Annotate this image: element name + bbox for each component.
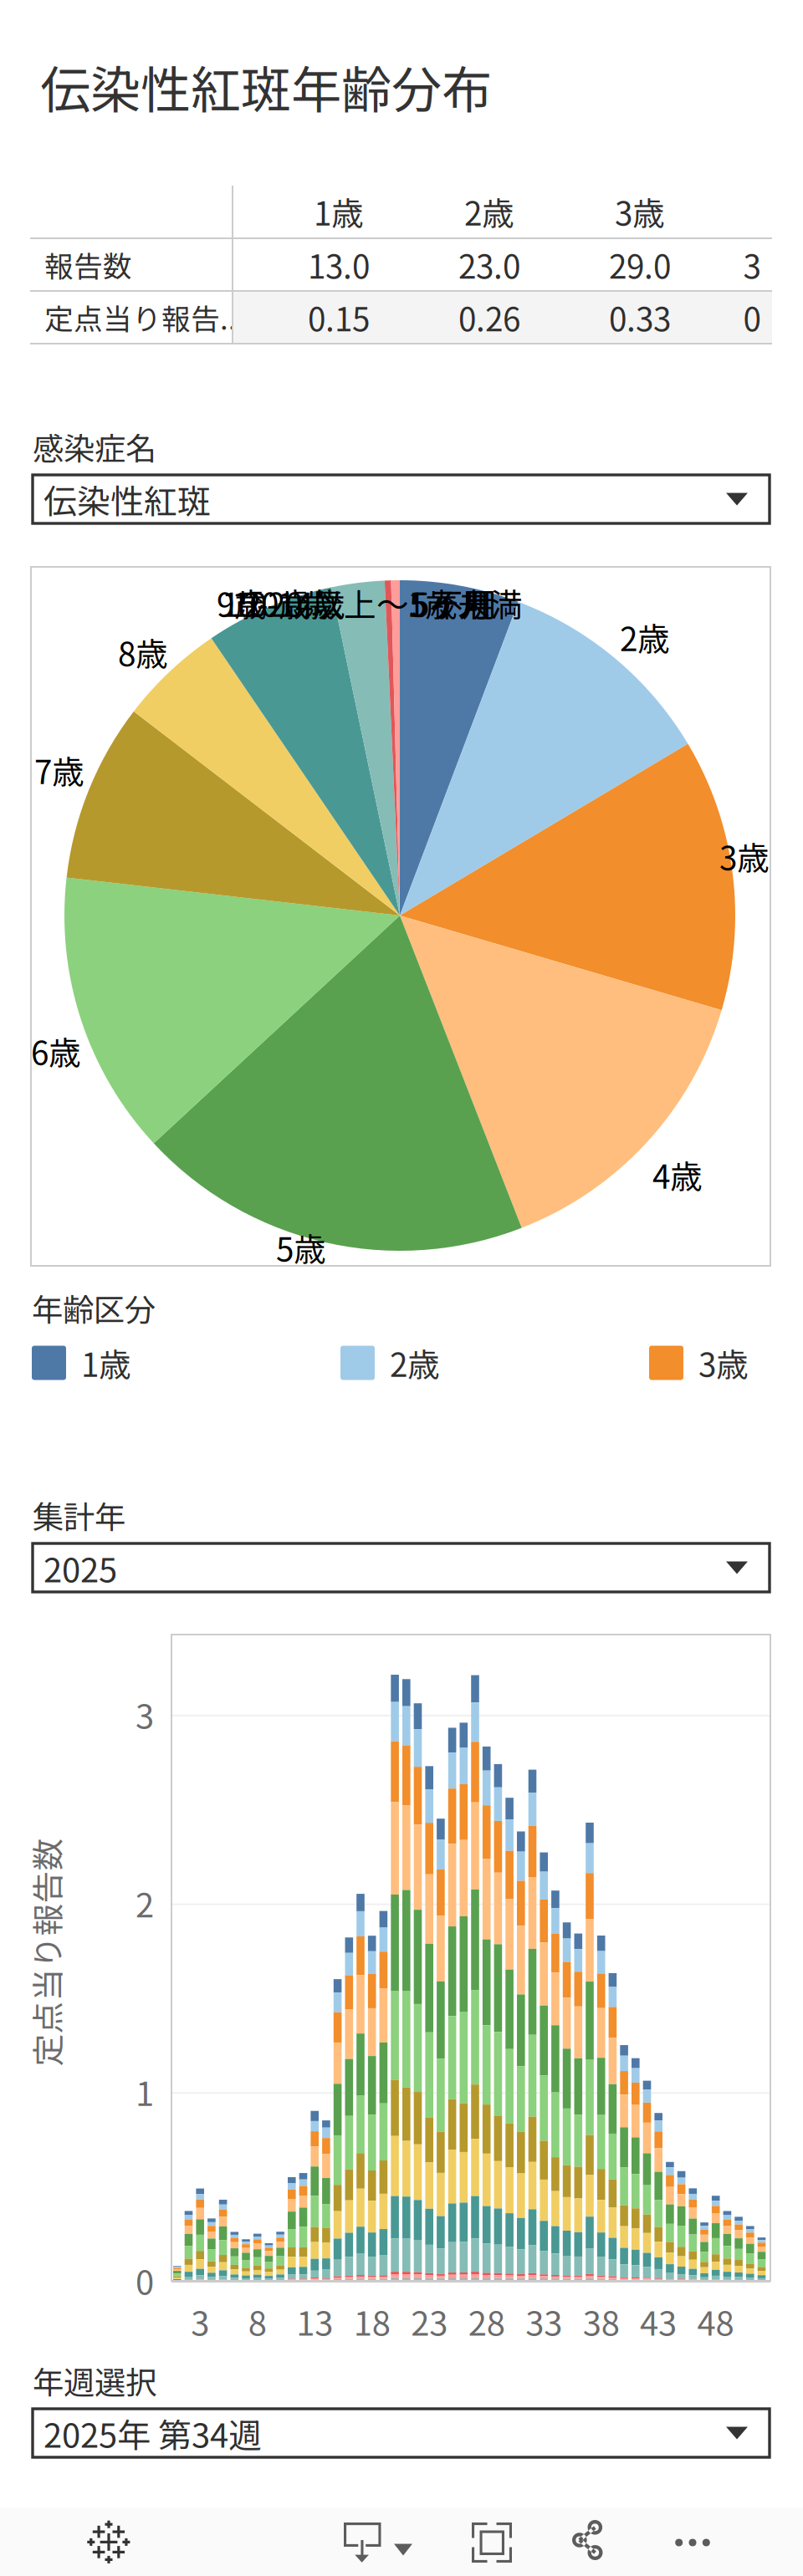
staticText: 10-14歳 <box>232 579 345 626</box>
staticText: 2歳 <box>390 1339 440 1386</box>
staticText: 伝染性紅斑 <box>43 475 211 523</box>
button[interactable]: More options <box>675 2538 710 2548</box>
staticText: 5ヶ月 <box>412 579 494 626</box>
staticText: 定点当り報告.. <box>44 296 237 338</box>
staticText: 年週選択 <box>33 2358 156 2403</box>
button[interactable]: Download <box>344 2522 413 2563</box>
staticText: 4歳 <box>652 1151 703 1198</box>
button[interactable]: Tableau <box>87 2520 130 2563</box>
staticText: 3歳 <box>719 833 770 880</box>
staticText: 〜5ヶ月 <box>376 579 492 626</box>
staticText: 報告数 <box>44 244 132 286</box>
staticText: 3 <box>136 1690 154 1738</box>
staticText: 定点当り報告数 <box>0 1929 160 1976</box>
button[interactable]: 3歳 <box>649 1339 749 1386</box>
button[interactable]: 伝染性紅斑 <box>33 475 770 523</box>
staticText: 28 <box>468 2297 505 2345</box>
button[interactable]: 1歳 <box>32 1339 131 1386</box>
staticText: 3歳 <box>615 188 665 235</box>
staticText: 3 <box>191 2297 209 2345</box>
staticText: 2025 <box>43 1543 117 1592</box>
staticText: 48 <box>697 2297 734 2345</box>
staticText: 0.15 <box>308 294 370 341</box>
staticText: 0 <box>743 294 761 341</box>
button[interactable]: Full screen <box>472 2522 512 2563</box>
staticText: 集計年 <box>33 1492 125 1538</box>
staticText: 1 <box>136 2067 154 2116</box>
staticText: 2025年 第34週 <box>43 2409 262 2457</box>
staticText: 8歳 <box>118 629 168 676</box>
staticText: 1歳未満 <box>407 579 523 626</box>
staticText: 38 <box>583 2297 619 2345</box>
button[interactable]: Share <box>572 2520 604 2563</box>
staticText: 6歳 <box>31 1028 81 1074</box>
staticText: 9歳 <box>217 579 267 626</box>
staticText: 0.26 <box>458 294 520 341</box>
button[interactable]: 2025 <box>33 1543 770 1592</box>
staticText: 2歳 <box>620 614 670 661</box>
staticText: 0 <box>136 2256 154 2304</box>
staticText: 43 <box>640 2297 677 2345</box>
staticText: 13 <box>296 2297 333 2345</box>
button[interactable]: 2歳 <box>340 1339 440 1386</box>
staticText: 15-20歳 <box>222 579 335 626</box>
staticText: 2歳 <box>464 188 514 235</box>
staticText: 18 <box>354 2297 390 2345</box>
staticText: 3歳 <box>698 1339 749 1386</box>
staticText: 20歳以上 <box>243 579 376 626</box>
staticText: 23 <box>411 2297 448 2345</box>
staticText: 23.0 <box>458 241 520 288</box>
staticText: 7歳 <box>34 747 84 793</box>
staticText: 0.33 <box>609 294 671 341</box>
staticText: 3 <box>743 241 761 288</box>
staticText: 1歳 <box>81 1339 131 1386</box>
staticText: 33 <box>525 2297 562 2345</box>
staticText: 5歳 <box>276 1224 326 1271</box>
staticText: 年齢区分 <box>32 1285 156 1330</box>
button[interactable]: 2025年 第34週 <box>33 2409 770 2457</box>
staticText: 2 <box>136 1878 154 1927</box>
staticText: 不明 <box>431 579 496 626</box>
staticText: 13.0 <box>308 241 370 288</box>
staticText: 29.0 <box>609 241 671 288</box>
staticText: 8 <box>248 2297 267 2345</box>
staticText: 1歳 <box>314 188 364 235</box>
staticText: 伝染性紅斑年齢分布 <box>40 50 492 123</box>
staticText: 感染症名 <box>33 424 156 469</box>
